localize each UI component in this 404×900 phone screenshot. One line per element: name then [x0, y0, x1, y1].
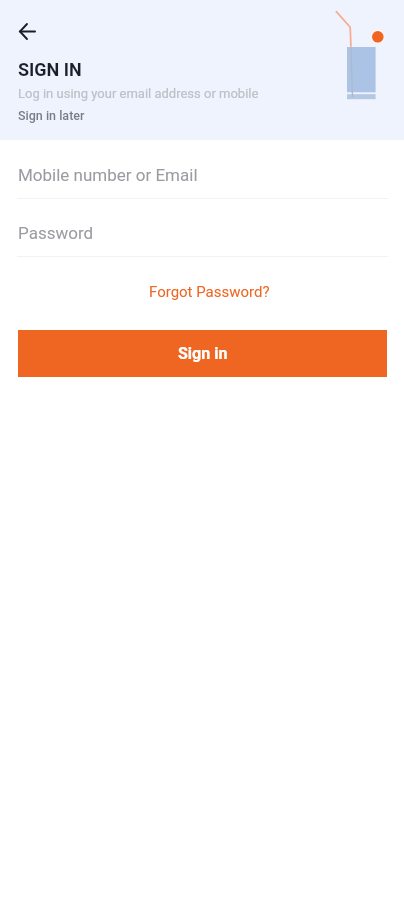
staticText: Sign in later [18, 108, 85, 123]
staticText: Sign in [178, 344, 228, 363]
staticText: Forgot Password? [149, 283, 270, 301]
button[interactable]: Back [9, 13, 45, 50]
button[interactable]: Password [0, 205, 404, 258]
staticText: Mobile number or Email [18, 165, 198, 185]
button[interactable]: Sign in [18, 330, 387, 377]
button[interactable]: Forgot Password? [143, 279, 276, 305]
button[interactable]: Mobile number or Email [0, 147, 404, 200]
staticText: SIGN IN [18, 59, 82, 80]
button[interactable]: Sign in later [18, 108, 85, 123]
staticText: Password [18, 223, 94, 243]
staticText: Log in using your email address or mobil… [18, 86, 259, 101]
